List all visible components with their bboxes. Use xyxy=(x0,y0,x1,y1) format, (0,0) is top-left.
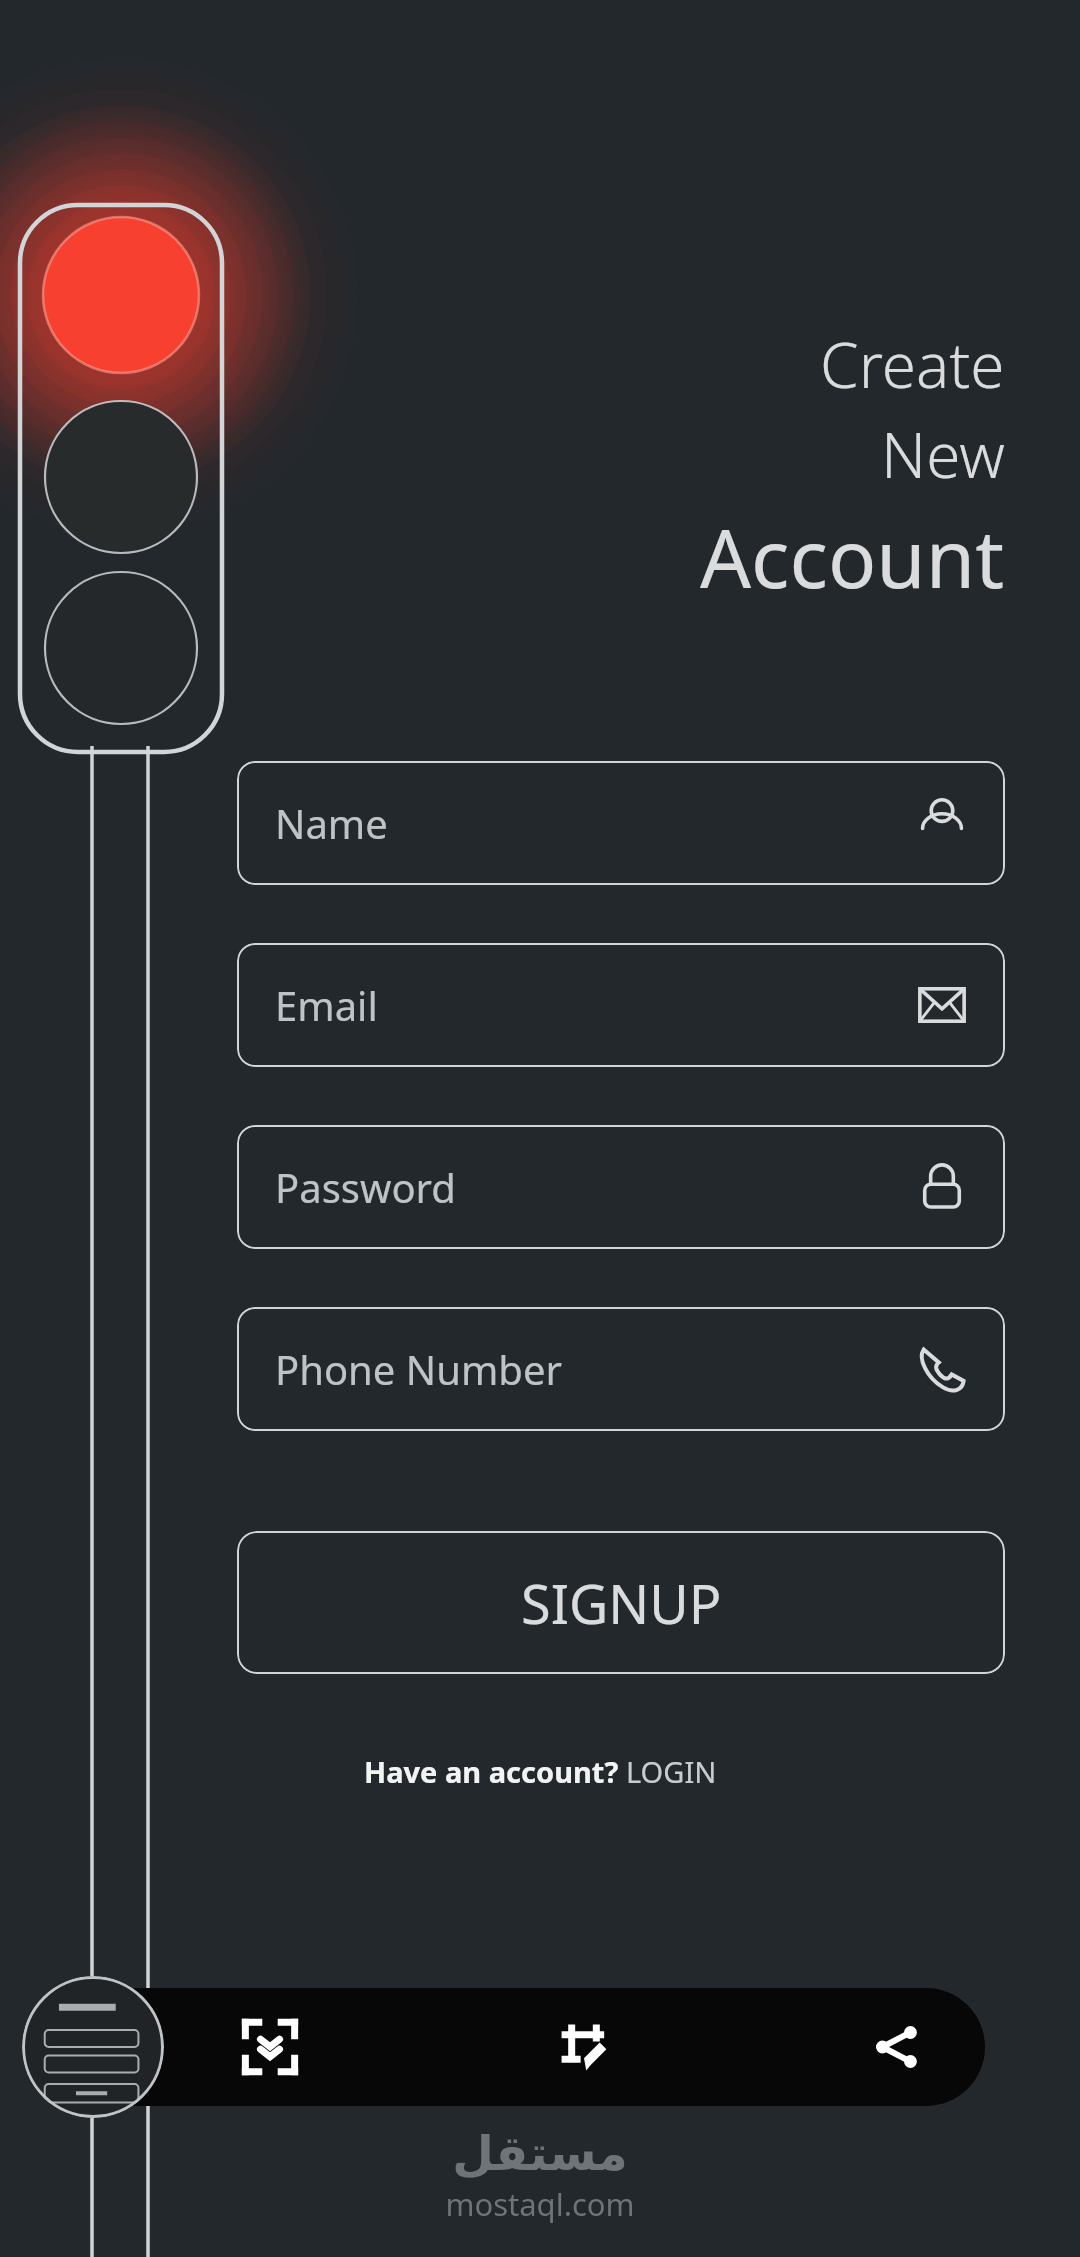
button[interactable]: Edit xyxy=(536,1999,632,2095)
button[interactable]: Name xyxy=(237,761,1005,885)
staticText: SIGNUP xyxy=(521,1566,722,1640)
staticText: mostaql.com xyxy=(445,2183,635,2225)
staticText: مستقل xyxy=(452,2125,628,2181)
staticText: Create xyxy=(820,322,1005,406)
staticText: Have an account? xyxy=(364,1752,626,1791)
button[interactable]: Share xyxy=(849,1999,945,2095)
button[interactable]: Have an account? xyxy=(352,1746,729,1797)
staticText: Phone Number xyxy=(275,1342,562,1396)
button[interactable]: SIGNUP xyxy=(237,1531,1005,1674)
staticText: Email xyxy=(275,978,378,1032)
button[interactable]: Save xyxy=(222,1999,318,2095)
staticText: LOGIN xyxy=(626,1752,717,1791)
button[interactable]: Preview xyxy=(22,1976,164,2118)
staticText: Account xyxy=(700,502,1005,611)
button[interactable]: Password xyxy=(237,1125,1005,1249)
button[interactable]: Phone Number xyxy=(237,1307,1005,1431)
button[interactable]: Email xyxy=(237,943,1005,1067)
staticText: Name xyxy=(275,796,388,850)
staticText: Password xyxy=(275,1160,456,1214)
staticText: New xyxy=(881,412,1005,496)
